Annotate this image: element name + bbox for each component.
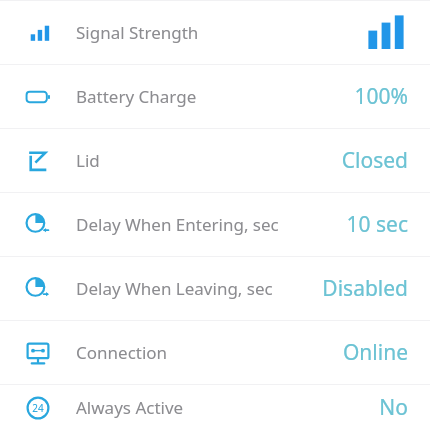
other: Delay when leaving	[25, 276, 51, 302]
staticText: Delay When Leaving, sec	[76, 277, 273, 300]
button[interactable]: Delay when leaving	[0, 257, 430, 320]
other: Connection	[25, 340, 51, 366]
other: Lid	[25, 148, 51, 174]
staticText: 100%	[354, 82, 408, 111]
button[interactable]: Lid	[0, 129, 430, 192]
button[interactable]: Signal strength	[0, 1, 430, 64]
staticText: Signal Strength	[76, 21, 199, 44]
staticText: Disabled	[322, 274, 408, 303]
button[interactable]: Battery charge	[0, 65, 430, 128]
staticText: Delay When Entering, sec	[76, 213, 279, 236]
other: Always active	[25, 395, 51, 421]
staticText: Always Active	[76, 396, 184, 419]
button[interactable]: Connection	[0, 321, 430, 384]
staticText: Online	[342, 338, 408, 367]
other: Signal strength	[25, 20, 51, 46]
button[interactable]: Always active	[0, 385, 430, 430]
staticText: 24	[32, 401, 44, 415]
other: Battery charge	[25, 84, 51, 110]
other: Delay when entering	[25, 212, 51, 238]
staticText: Connection	[76, 341, 168, 364]
staticText: Lid	[76, 149, 100, 172]
button[interactable]: Delay when entering	[0, 193, 430, 256]
staticText: 10 sec	[346, 210, 408, 239]
staticText: Battery Charge	[76, 85, 197, 108]
staticText: No	[379, 393, 408, 422]
staticText: Closed	[341, 146, 408, 175]
